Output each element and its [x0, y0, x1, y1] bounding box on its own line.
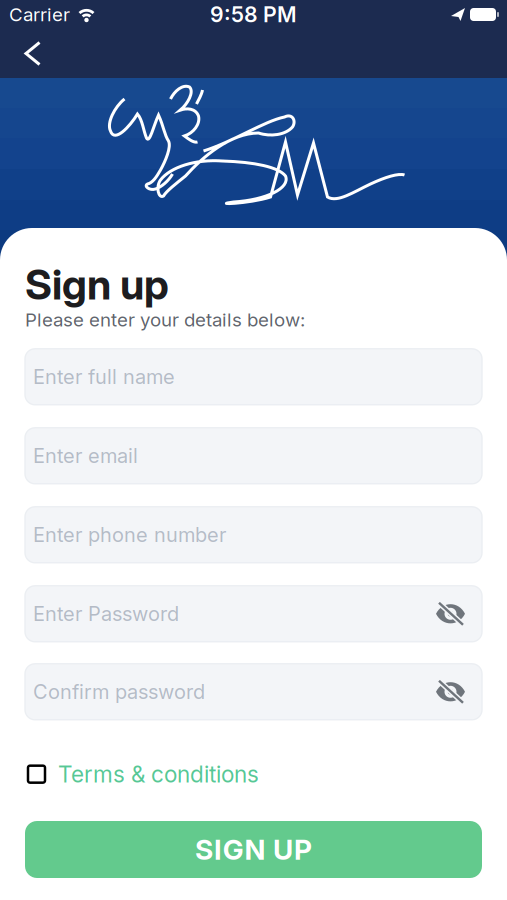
button[interactable]: Terms & conditions: [28, 761, 259, 787]
button[interactable]: Back: [0, 29, 61, 77]
staticText: 9:58 PM: [210, 2, 297, 27]
staticText: SIGN UP: [195, 833, 312, 866]
staticText: Enter email: [33, 444, 138, 468]
button[interactable]: SIGN UP: [25, 821, 482, 878]
staticText: Confirm password: [33, 680, 205, 704]
staticText: Enter full name: [33, 365, 175, 389]
button[interactable]: Show password: [436, 603, 465, 625]
staticText: Terms & conditions: [58, 761, 259, 787]
staticText: Please enter your details below:: [25, 309, 305, 331]
staticText: Carrier: [9, 3, 70, 25]
staticText: Enter Password: [33, 602, 179, 626]
button[interactable]: Show password: [436, 681, 465, 703]
staticText: Enter phone number: [33, 523, 226, 547]
staticText: Sign up: [25, 260, 169, 309]
